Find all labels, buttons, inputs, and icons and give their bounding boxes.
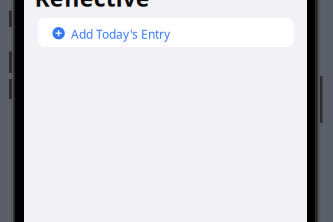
staticText: Add Today's Entry xyxy=(71,26,170,42)
staticText: Reflective xyxy=(35,0,150,13)
button[interactable]: Add Today's Entry xyxy=(38,18,294,47)
